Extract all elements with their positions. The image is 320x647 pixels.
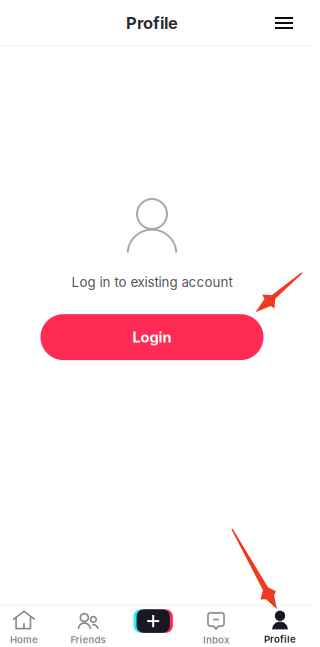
staticText: Log in to existing account bbox=[71, 274, 232, 290]
button[interactable]: Create bbox=[120, 605, 184, 647]
staticText: Inbox bbox=[203, 634, 229, 646]
button[interactable]: Menu bbox=[264, 1, 304, 45]
staticText: Profile bbox=[264, 633, 296, 645]
button[interactable]: Profile bbox=[248, 605, 312, 647]
button[interactable]: Login bbox=[40, 314, 263, 360]
staticText: Friends bbox=[70, 634, 105, 646]
button[interactable]: Friends bbox=[56, 605, 120, 647]
staticText: Login bbox=[132, 328, 171, 346]
staticText: Profile bbox=[126, 13, 178, 33]
staticText: Home bbox=[10, 634, 38, 645]
button[interactable]: Home bbox=[0, 605, 56, 647]
button[interactable]: Inbox bbox=[184, 605, 248, 647]
